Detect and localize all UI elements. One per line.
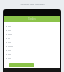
button[interactable] [4,32,60,36]
button[interactable] [9,63,34,67]
button[interactable] [4,56,60,60]
button[interactable] [4,40,60,44]
staticText: Tasks [28,17,36,21]
button[interactable] [4,44,60,48]
button[interactable] [4,48,60,52]
staticText: Android Task Manager [20,3,45,6]
button[interactable] [4,24,60,28]
button[interactable] [4,52,60,56]
button[interactable] [4,36,60,40]
button[interactable] [4,28,60,32]
